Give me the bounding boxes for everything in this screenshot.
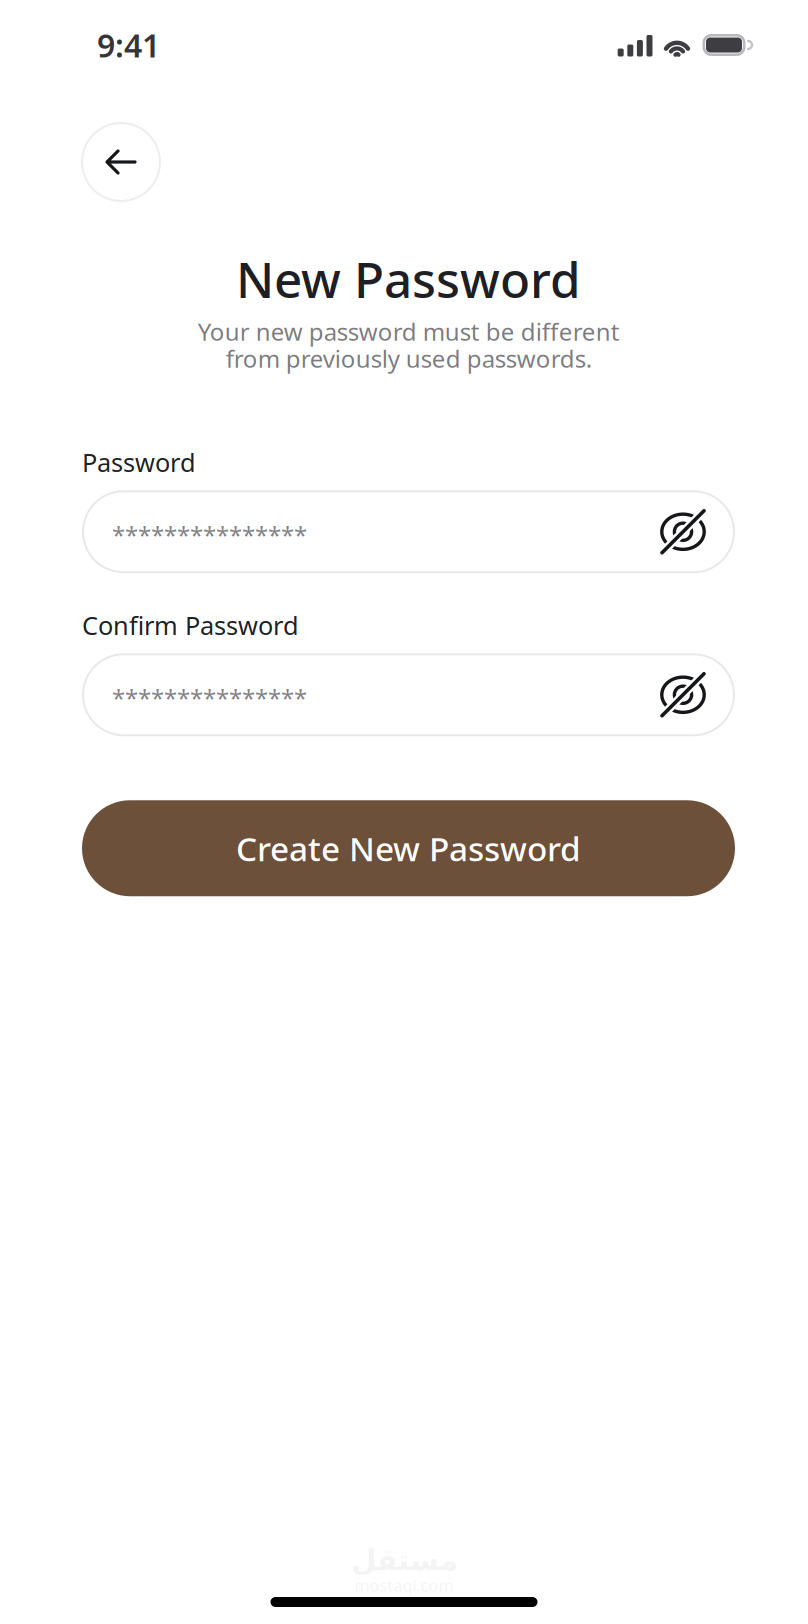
staticText: *************** [112, 682, 307, 714]
staticText: Create New Password [236, 826, 581, 870]
button[interactable]: Back [81, 122, 161, 202]
button[interactable]: Create New Password [82, 800, 735, 896]
button[interactable]: Show password [631, 490, 735, 573]
staticText: New Password [236, 246, 581, 311]
button[interactable]: Show password [631, 653, 735, 736]
staticText: Password [82, 445, 196, 479]
staticText: 9:41 [97, 24, 160, 66]
staticText: Your new password must be different from… [197, 315, 619, 374]
staticText: Confirm Password [82, 608, 299, 642]
staticText: mostaql.com [354, 1575, 453, 1596]
staticText: *************** [112, 519, 307, 551]
staticText: مستقل [350, 1543, 457, 1577]
